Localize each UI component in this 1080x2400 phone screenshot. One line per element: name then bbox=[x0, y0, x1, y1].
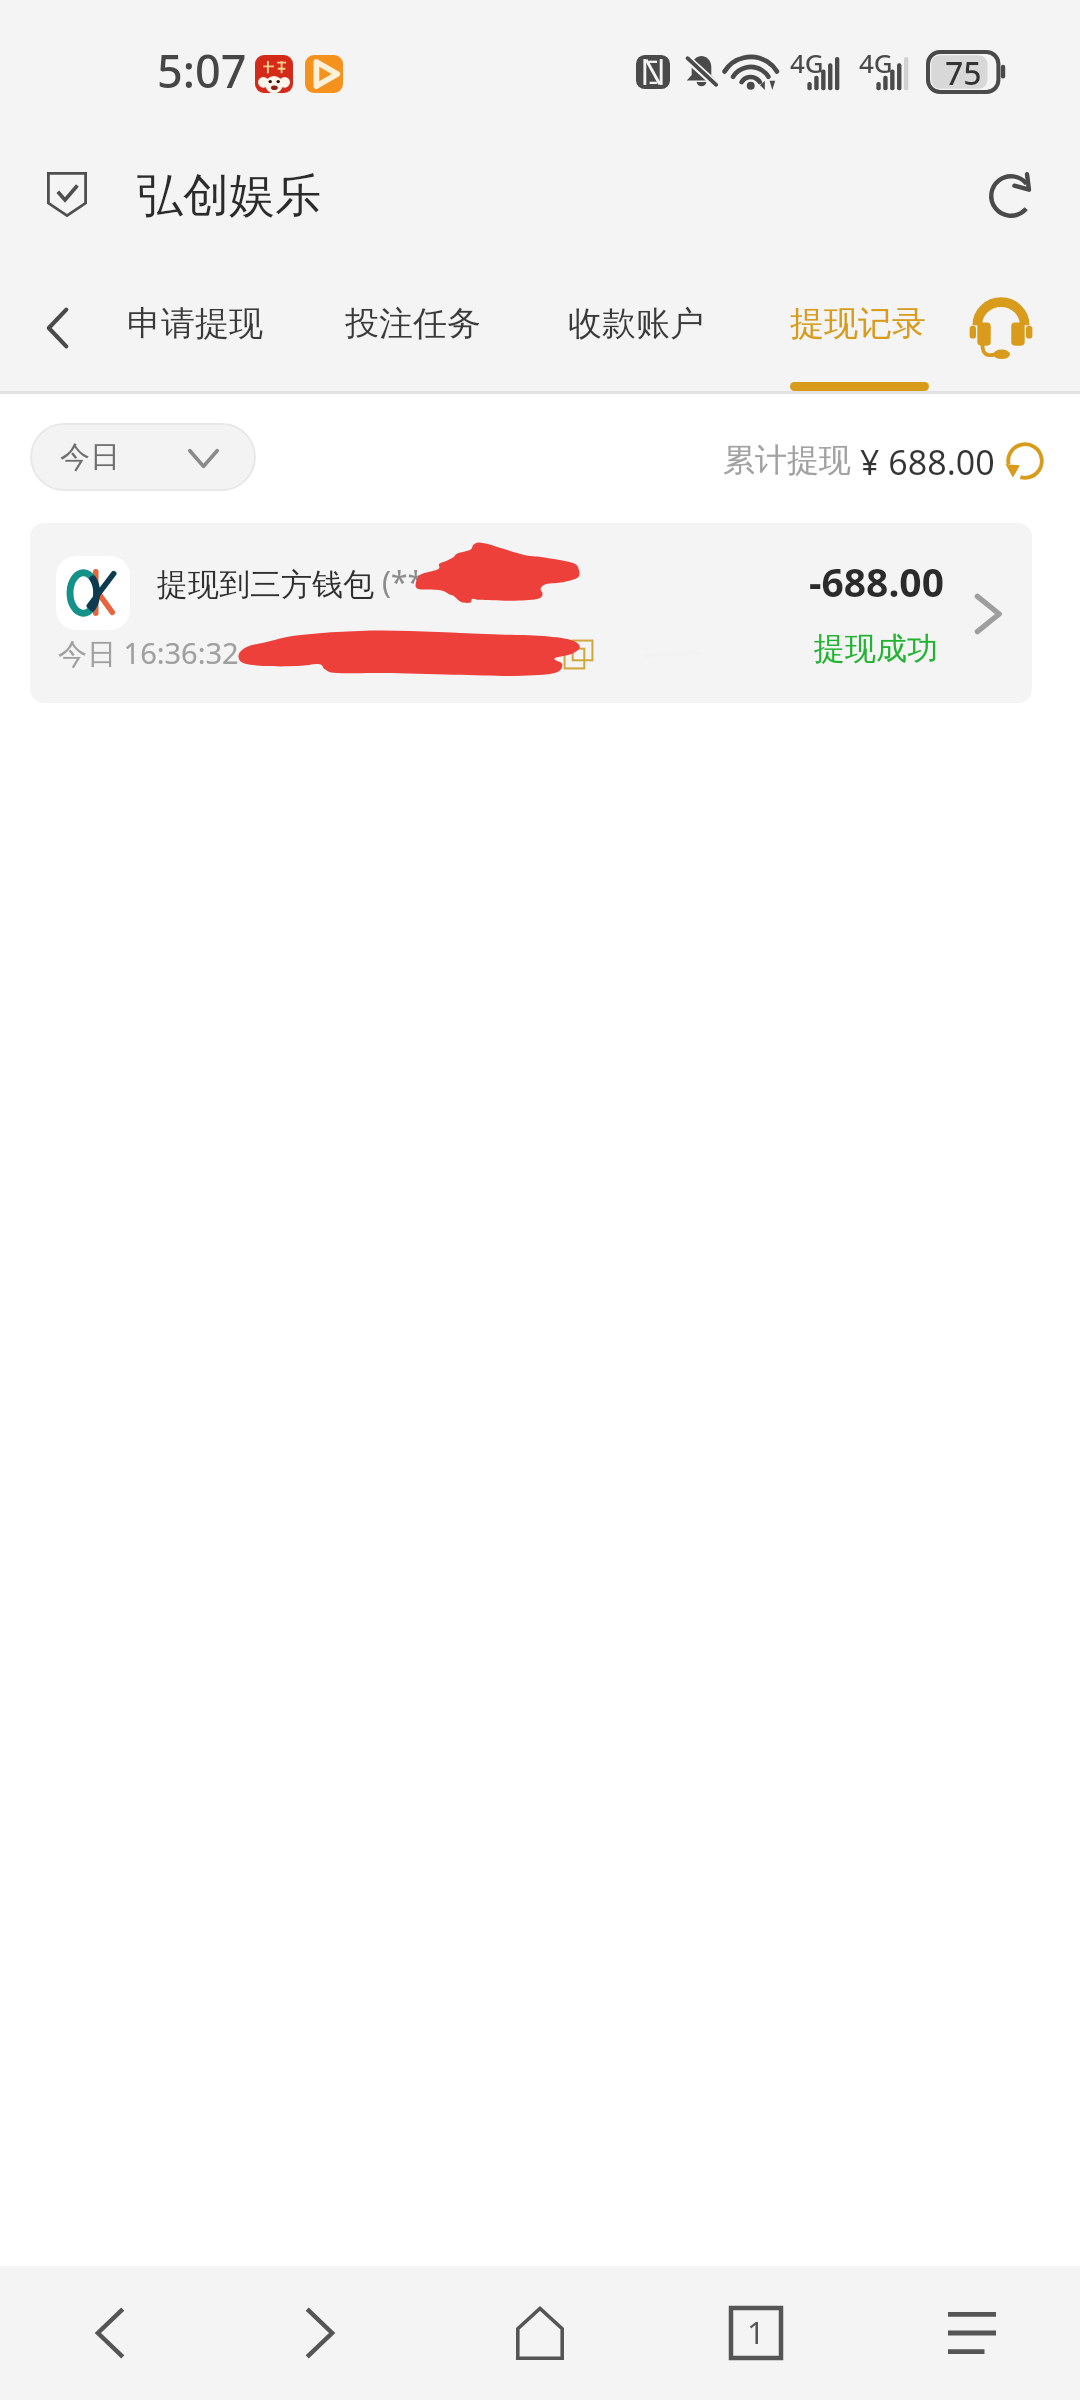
staticText: 4G bbox=[790, 45, 824, 80]
staticText: 1 bbox=[747, 2311, 765, 2353]
staticText: 弘创娱乐 bbox=[137, 167, 321, 225]
other: Secure bbox=[47, 172, 87, 217]
staticText: 75 bbox=[945, 51, 982, 91]
button[interactable]: 提现到三方钱包 bbox=[30, 523, 1032, 703]
staticText: 累计提现 bbox=[723, 440, 851, 480]
staticText: -688.00 bbox=[809, 555, 944, 608]
staticText: 今日 bbox=[60, 438, 120, 476]
button[interactable]: 收款账户 bbox=[544, 264, 728, 391]
staticText: 今日 16:36:32 bbox=[58, 633, 239, 673]
staticText: 提现记录 bbox=[790, 302, 926, 345]
button[interactable]: 申请提现 bbox=[103, 264, 287, 391]
button[interactable]: 提现记录 bbox=[766, 264, 950, 391]
button[interactable]: Refresh bbox=[972, 157, 1050, 235]
button[interactable]: Forward bbox=[282, 2293, 362, 2373]
staticText: ¥ 688.00 bbox=[860, 439, 995, 485]
staticText: 提现成功 bbox=[814, 629, 938, 668]
button[interactable]: Customer service bbox=[962, 290, 1040, 368]
staticText: 5:07 bbox=[157, 40, 247, 101]
button[interactable]: Back bbox=[22, 292, 94, 364]
button[interactable]: Tabs bbox=[716, 2293, 796, 2373]
button[interactable]: Home bbox=[500, 2293, 580, 2373]
staticText: 310 bbox=[259, 634, 309, 673]
staticText: 投注任务 bbox=[345, 302, 481, 345]
staticText: (** bbox=[382, 561, 425, 602]
staticText: 收款账户 bbox=[568, 302, 704, 345]
staticText: 申请提现 bbox=[127, 302, 263, 345]
button[interactable]: Refresh total bbox=[1001, 437, 1049, 485]
button[interactable]: 投注任务 bbox=[321, 264, 505, 391]
staticText: 提现到三方钱包 bbox=[157, 565, 374, 604]
button[interactable]: Menu bbox=[932, 2293, 1012, 2373]
button[interactable]: 今日 bbox=[30, 423, 256, 491]
staticText: 4G bbox=[859, 45, 893, 80]
button[interactable]: Back bbox=[68, 2293, 148, 2373]
